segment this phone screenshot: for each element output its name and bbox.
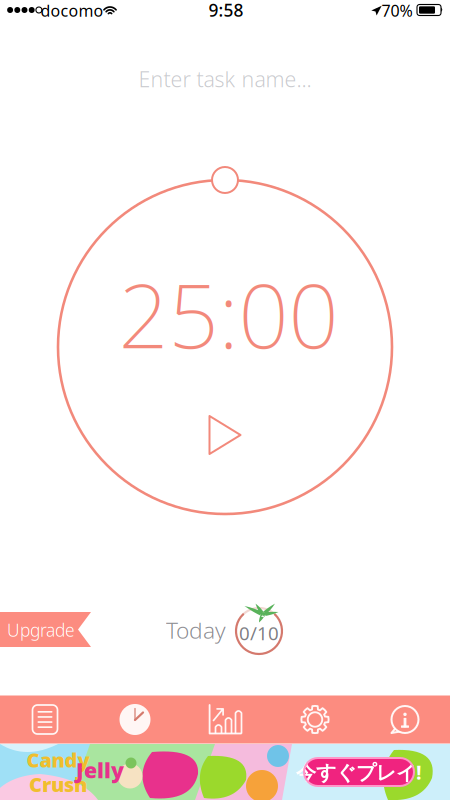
staticText: 70% [381,0,412,21]
button[interactable]: Statistics [180,695,270,743]
staticText: 9:58 [208,0,243,21]
staticText: 0/10 [239,621,279,645]
staticText: docomo [40,0,103,21]
staticText: Candy [26,746,89,773]
staticText: Crush [29,771,87,798]
staticText: Jelly [76,756,124,784]
staticText: Enter task name... [138,65,311,93]
staticText: Today [166,615,226,645]
button[interactable]: Timer [90,695,180,743]
button[interactable]: Settings [270,695,360,743]
button[interactable]: Info [360,695,450,743]
staticText: 25:00 [118,256,338,372]
staticText: Upgrade [7,618,75,641]
button[interactable]: Enter task name... [0,59,450,99]
button[interactable]: Start timer [190,400,260,470]
staticText: 今すぐプレイ! [296,759,422,785]
button[interactable]: Upgrade [0,612,91,647]
button[interactable]: Candy Crush advertisement [0,744,450,800]
button[interactable]: Tasks [0,695,90,743]
